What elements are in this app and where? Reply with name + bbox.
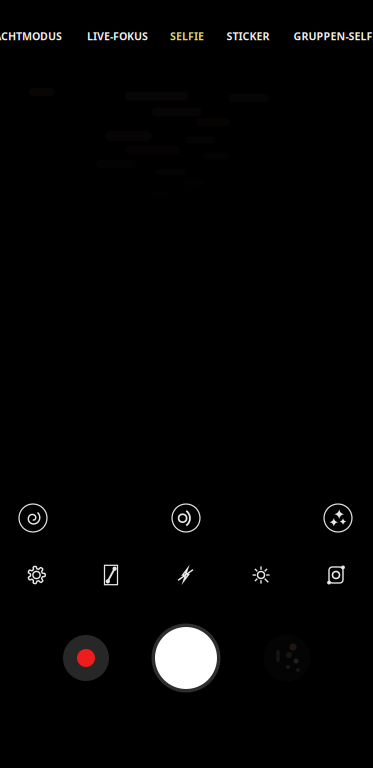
button[interactable]: NACHTMODUS (0, 21, 66, 51)
button[interactable]: Aspect ratio (93, 559, 129, 591)
button[interactable]: Settings (18, 559, 54, 591)
button[interactable]: Filters (323, 503, 353, 533)
button[interactable]: STICKER (222, 21, 273, 51)
button[interactable]: Brightness (243, 559, 279, 591)
button[interactable]: SELFIE (166, 21, 208, 51)
button[interactable]: Gallery (259, 630, 315, 686)
button[interactable]: GRUPPEN-SELFIE (289, 21, 373, 51)
button[interactable]: Flash off (167, 559, 203, 591)
button[interactable]: Portrait blur (171, 503, 201, 533)
staticText: STICKER (226, 29, 269, 43)
staticText: NACHTMODUS (0, 29, 62, 43)
button[interactable]: Beauty (18, 503, 48, 533)
button[interactable]: Record video (58, 630, 114, 686)
button[interactable]: Take photo (150, 622, 222, 694)
staticText: GRUPPEN-SELFIE (293, 29, 373, 43)
staticText: SELFIE (170, 29, 204, 43)
button[interactable]: LIVE-FOKUS (83, 21, 152, 51)
staticText: LIVE-FOKUS (87, 29, 148, 43)
button[interactable]: Switch camera (318, 559, 354, 591)
